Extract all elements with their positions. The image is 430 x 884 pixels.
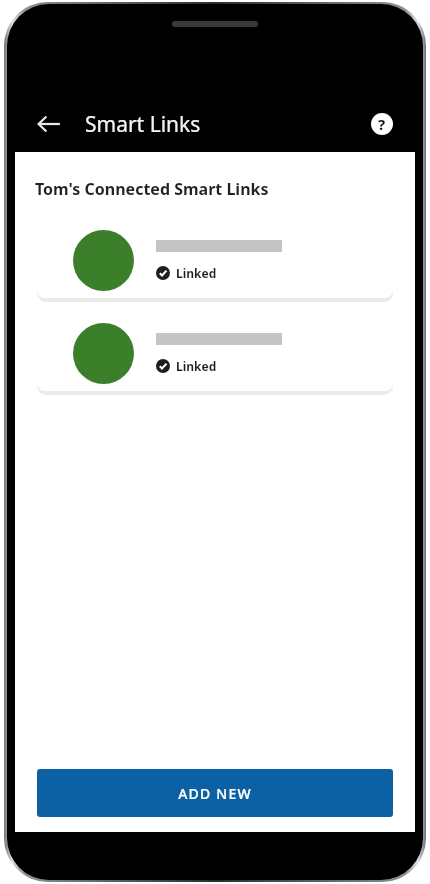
- button[interactable]: Linked: [37, 315, 393, 391]
- staticText: Tom's Connected Smart Links: [35, 178, 269, 200]
- button[interactable]: ADD NEW: [37, 769, 393, 817]
- staticText: Smart Links: [85, 110, 201, 139]
- staticText: ADD NEW: [178, 784, 252, 803]
- staticText: Linked: [176, 265, 217, 281]
- button[interactable]: Back: [27, 102, 71, 146]
- button[interactable]: Help: [361, 103, 403, 145]
- button[interactable]: Linked: [37, 222, 393, 298]
- staticText: Linked: [176, 358, 217, 374]
- staticText: ?: [378, 114, 386, 134]
